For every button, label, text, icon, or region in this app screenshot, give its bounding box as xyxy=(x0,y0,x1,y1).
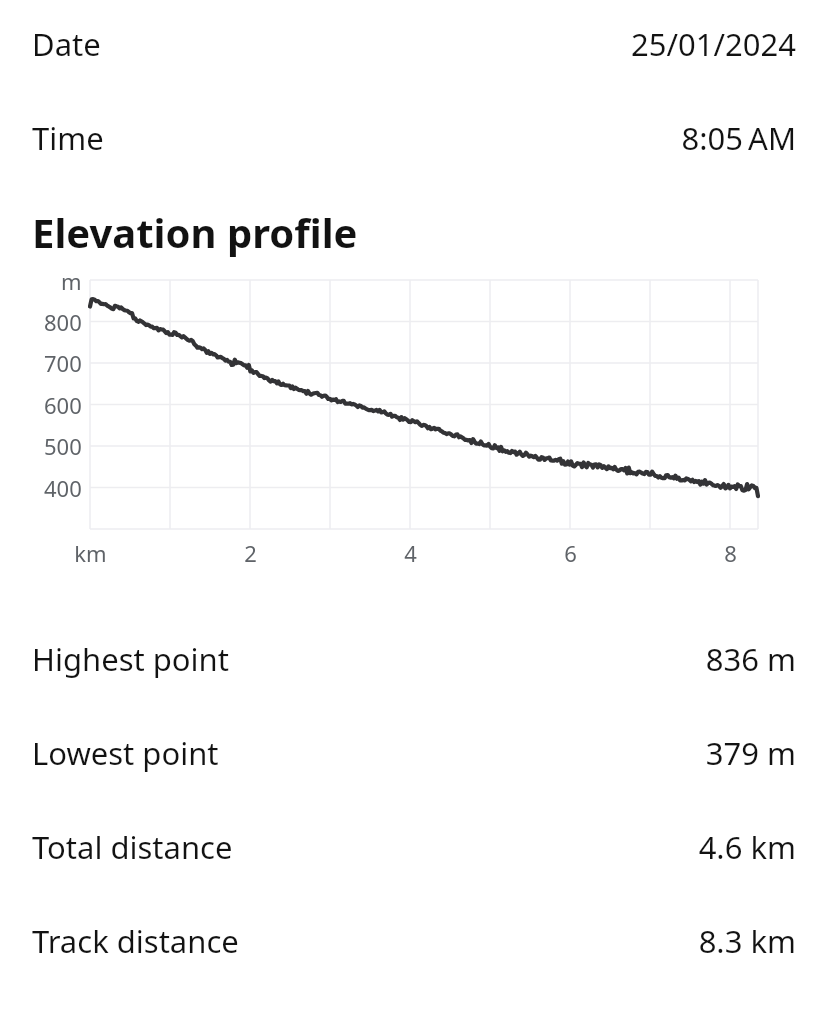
button[interactable]: Highest point xyxy=(0,632,828,686)
staticText: Highest point xyxy=(32,638,229,680)
staticText: Time xyxy=(32,117,104,159)
staticText: Date xyxy=(32,23,101,65)
staticText: Total distance xyxy=(32,826,233,868)
button[interactable]: Lowest point xyxy=(0,726,828,780)
staticText: 700 xyxy=(44,348,82,378)
button[interactable]: Track distance xyxy=(0,914,828,968)
staticText: Track distance xyxy=(32,920,239,962)
staticText: 800 xyxy=(44,307,82,337)
staticText: 4 xyxy=(404,538,417,568)
staticText: 600 xyxy=(44,390,82,420)
staticText: 836 m xyxy=(705,638,796,680)
staticText: 500 xyxy=(44,431,82,461)
staticText: 379 m xyxy=(705,732,796,774)
staticText: 4.6 km xyxy=(698,826,796,868)
button[interactable]: Total distance xyxy=(0,820,828,874)
staticText: 2 xyxy=(244,538,257,568)
staticText: 400 xyxy=(44,473,82,503)
button[interactable]: Date xyxy=(0,17,828,71)
staticText: 8:05 AM xyxy=(681,117,796,159)
staticText: m xyxy=(61,266,82,296)
staticText: 6 xyxy=(564,538,577,568)
button[interactable]: Time xyxy=(0,111,828,165)
staticText: 8 xyxy=(724,538,737,568)
staticText: 8.3 km xyxy=(698,920,796,962)
staticText: Elevation profile xyxy=(32,205,358,259)
staticText: km xyxy=(74,538,107,568)
staticText: Lowest point xyxy=(32,732,219,774)
staticText: 25/01/2024 xyxy=(631,23,796,65)
